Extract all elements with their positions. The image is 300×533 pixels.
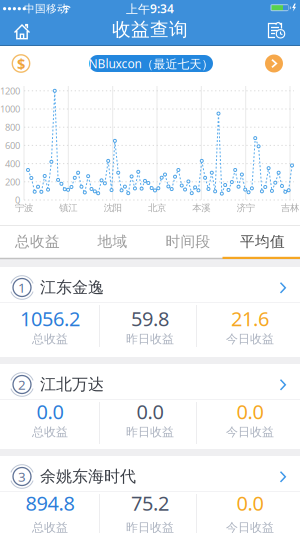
staticText: 宁波 [15,202,33,214]
staticText: 济宁 [237,202,255,214]
staticText: 上午9:34 [126,1,174,17]
staticText: 2 [18,376,26,393]
staticText: 总收益 [32,425,68,439]
staticText: 21.6 [231,305,269,332]
staticText: 800 [5,121,20,133]
staticText: 0.0 [236,490,263,516]
staticText: 沈阳 [104,202,122,214]
staticText: 59.8 [131,305,169,332]
staticText: 余姚东海时代 [40,467,136,486]
staticText: 400 [5,157,20,170]
staticText: 收益查询 [112,18,188,41]
staticText: 1000 [0,103,20,115]
staticText: 昨日收益 [126,520,174,533]
staticText: 平均值 [240,232,285,250]
staticText: 北京 [148,202,166,214]
staticText: 本溪 [192,202,210,214]
staticText: 地域 [97,232,127,250]
staticText: 今日收益 [226,425,274,439]
staticText: 1 [18,279,26,296]
staticText: 江东金逸 [40,278,104,297]
staticText: 200 [5,176,20,188]
staticText: 1200 [0,85,20,97]
staticText: 1056.2 [20,305,80,332]
staticText: 总收益 [32,332,68,346]
staticText: NBluxcon（最近七天） [88,55,213,71]
staticText: 镇江 [59,202,77,214]
staticText: 894.8 [25,490,74,516]
staticText: 昨日收益 [126,425,174,439]
staticText: 吉林 [281,202,299,214]
staticText: 总收益 [32,520,68,533]
staticText: $ [17,54,25,73]
staticText: 0.0 [236,398,263,425]
staticText: 昨日收益 [126,332,174,346]
staticText: 600 [5,139,20,152]
staticText: 0.0 [136,398,163,425]
staticText: 75.2 [131,490,169,516]
staticText: 总收益 [15,232,60,250]
staticText: 今日收益 [226,332,274,346]
staticText: 时间段 [165,232,210,250]
staticText: 今日收益 [226,520,274,533]
staticText: 0.0 [36,398,63,425]
staticText: 中国移动 [24,2,68,15]
staticText: 3 [18,468,26,485]
staticText: 0 [15,194,20,206]
staticText: 江北万达 [40,375,104,394]
